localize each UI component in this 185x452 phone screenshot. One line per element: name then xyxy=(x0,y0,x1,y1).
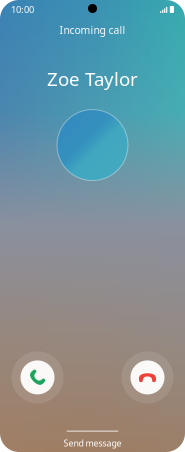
button[interactable]: Decline call xyxy=(121,351,173,403)
button[interactable]: Answer call xyxy=(11,351,63,403)
staticText: Zoe Taylor xyxy=(47,66,138,92)
staticText: Send message xyxy=(63,437,121,449)
staticText: Incoming call xyxy=(59,23,125,37)
staticText: 10:00 xyxy=(11,3,34,16)
button[interactable]: Send message xyxy=(0,430,185,449)
